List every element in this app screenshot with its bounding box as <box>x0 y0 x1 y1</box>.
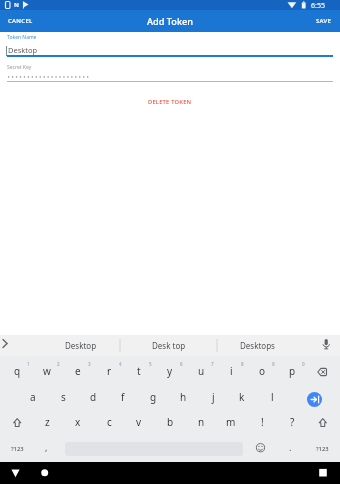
staticText: d <box>90 390 97 404</box>
button[interactable]: w <box>32 358 62 384</box>
staticText: m <box>226 415 236 429</box>
button[interactable]: ? <box>277 409 307 435</box>
button[interactable]: m <box>216 409 246 435</box>
button[interactable]: i <box>216 358 246 384</box>
staticText: r <box>107 364 112 378</box>
staticText: CANCEL <box>8 17 33 25</box>
staticText: 3 <box>88 361 91 367</box>
button[interactable]: CANCEL <box>6 15 35 27</box>
button[interactable]: s <box>48 384 78 410</box>
button[interactable]: q <box>2 358 32 384</box>
staticText: 0 <box>302 361 305 367</box>
button[interactable]: DELETE TOKEN <box>0 96 340 108</box>
staticText: z <box>45 415 50 429</box>
staticText: 2 <box>57 361 60 367</box>
button[interactable]: t <box>124 358 154 384</box>
staticText: c <box>107 415 112 429</box>
staticText: 7 <box>211 361 214 367</box>
button[interactable]: u <box>186 358 216 384</box>
staticText: Secret Key <box>7 64 32 71</box>
button[interactable] <box>307 392 322 407</box>
staticText: ?123 <box>11 445 24 453</box>
staticText: w <box>43 364 51 378</box>
staticText: Desktop <box>8 45 38 55</box>
button[interactable] <box>308 357 338 383</box>
staticText: 6:55 <box>311 1 325 11</box>
staticText: 6 <box>180 361 183 367</box>
staticText: a <box>30 390 36 404</box>
button[interactable]: f <box>108 384 138 410</box>
button[interactable]: d <box>78 384 108 410</box>
button[interactable]: . <box>275 434 305 460</box>
staticText: Add Token <box>147 15 194 28</box>
staticText: Token Name <box>7 34 37 41</box>
staticText: x <box>75 415 81 429</box>
button[interactable]: ?123 <box>2 436 32 462</box>
staticText: t <box>137 364 141 378</box>
button[interactable]: SAVE <box>314 15 334 27</box>
staticText: 8 <box>241 361 244 367</box>
button[interactable]: n <box>186 409 216 435</box>
button[interactable]: j <box>198 384 228 410</box>
button[interactable]: h <box>168 384 198 410</box>
staticText: , <box>45 441 48 453</box>
staticText: 4 <box>119 361 122 367</box>
staticText: Desk top <box>152 340 186 351</box>
button[interactable]: v <box>124 409 154 435</box>
button[interactable]: Desk top <box>124 335 214 356</box>
button[interactable]: a <box>18 384 48 410</box>
staticText: s <box>61 390 66 404</box>
staticText: f <box>121 390 125 404</box>
button[interactable] <box>35 463 55 483</box>
staticText: ? <box>290 415 295 429</box>
staticText: l <box>271 390 274 404</box>
staticText: b <box>167 415 174 429</box>
staticText: y <box>167 364 173 378</box>
button[interactable]: p <box>277 358 307 384</box>
staticText: q <box>14 364 21 378</box>
button[interactable]: Desktop <box>36 335 126 356</box>
button[interactable]: , <box>31 434 61 460</box>
button[interactable]: r <box>94 358 124 384</box>
staticText: 9 <box>272 361 275 367</box>
staticText: u <box>198 364 205 378</box>
staticText: Desktop <box>65 340 97 351</box>
button[interactable]: k <box>227 384 257 410</box>
staticText: 5 <box>149 361 152 367</box>
button[interactable]: b <box>155 409 185 435</box>
staticText: i <box>230 364 233 378</box>
staticText: k <box>239 390 245 404</box>
button[interactable]: e <box>63 358 93 384</box>
button[interactable]: ?123 <box>307 436 337 462</box>
button[interactable]: l <box>257 384 287 410</box>
staticText: N <box>14 1 19 9</box>
staticText: g <box>150 390 157 404</box>
staticText: ?123 <box>316 445 329 453</box>
staticText: e <box>75 364 81 378</box>
button[interactable]: x <box>63 409 93 435</box>
staticText: Desktops <box>240 340 275 351</box>
staticText: n <box>198 415 205 429</box>
staticText: 1 <box>27 361 30 367</box>
staticText: o <box>259 364 266 378</box>
button[interactable]: ! <box>247 409 277 435</box>
staticText: DELETE TOKEN <box>148 98 192 106</box>
button[interactable] <box>6 463 26 483</box>
staticText: h <box>180 390 187 404</box>
button[interactable]: g <box>138 384 168 410</box>
button[interactable]: z <box>32 409 62 435</box>
staticText: . <box>289 441 292 453</box>
staticText: SAVE <box>316 17 332 25</box>
staticText: j <box>212 390 215 404</box>
button[interactable]: y <box>155 358 185 384</box>
button[interactable]: Desktops <box>212 335 302 356</box>
button[interactable]: o <box>247 358 277 384</box>
button[interactable]: c <box>94 409 124 435</box>
staticText: ! <box>261 415 264 429</box>
button[interactable] <box>313 463 333 483</box>
staticText: p <box>289 364 296 378</box>
staticText: v <box>136 415 142 429</box>
